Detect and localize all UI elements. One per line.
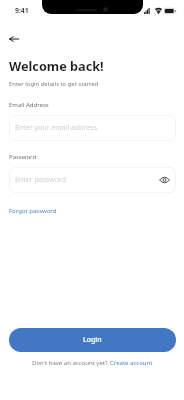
staticText: Password	[9, 153, 37, 161]
button[interactable]: Forgot password	[9, 207, 57, 215]
staticText: Enter login details to get started	[9, 80, 99, 88]
staticText: Email Address	[9, 101, 49, 109]
button[interactable]: Login	[9, 328, 176, 352]
button[interactable]: Show password	[158, 173, 171, 186]
button[interactable]: Create account	[110, 359, 153, 367]
staticText: Welcome back!	[9, 57, 104, 74]
staticText: Create account	[110, 359, 153, 367]
staticText: Enter password	[15, 175, 67, 185]
button[interactable]: Enter your email address	[9, 115, 176, 141]
staticText: Login	[83, 335, 102, 345]
staticText: 9:41	[15, 6, 29, 15]
button[interactable]: Enter password	[9, 167, 176, 193]
staticText: Don't have an account yet?	[32, 359, 110, 367]
staticText: Enter your email address	[15, 123, 98, 133]
button[interactable]: Back	[2, 27, 26, 51]
staticText: Forgot password	[9, 207, 57, 215]
